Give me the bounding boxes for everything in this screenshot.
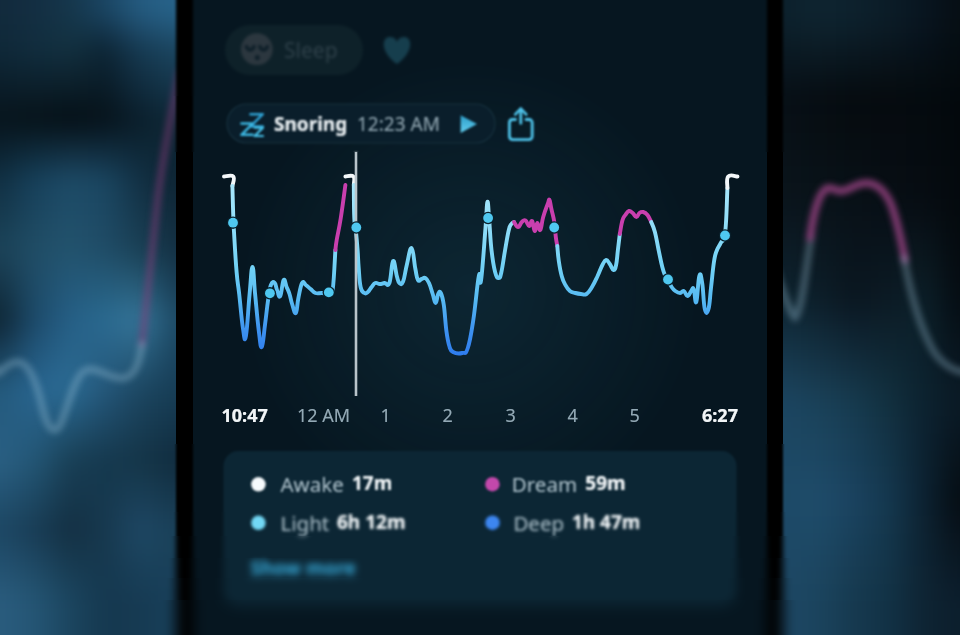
button[interactable]: Share (504, 102, 546, 144)
button[interactable]: Favourite (374, 28, 420, 74)
button[interactable]: Show more (240, 548, 380, 586)
button[interactable]: Sleep session (225, 25, 363, 75)
button[interactable]: Play snoring recording (227, 104, 493, 143)
